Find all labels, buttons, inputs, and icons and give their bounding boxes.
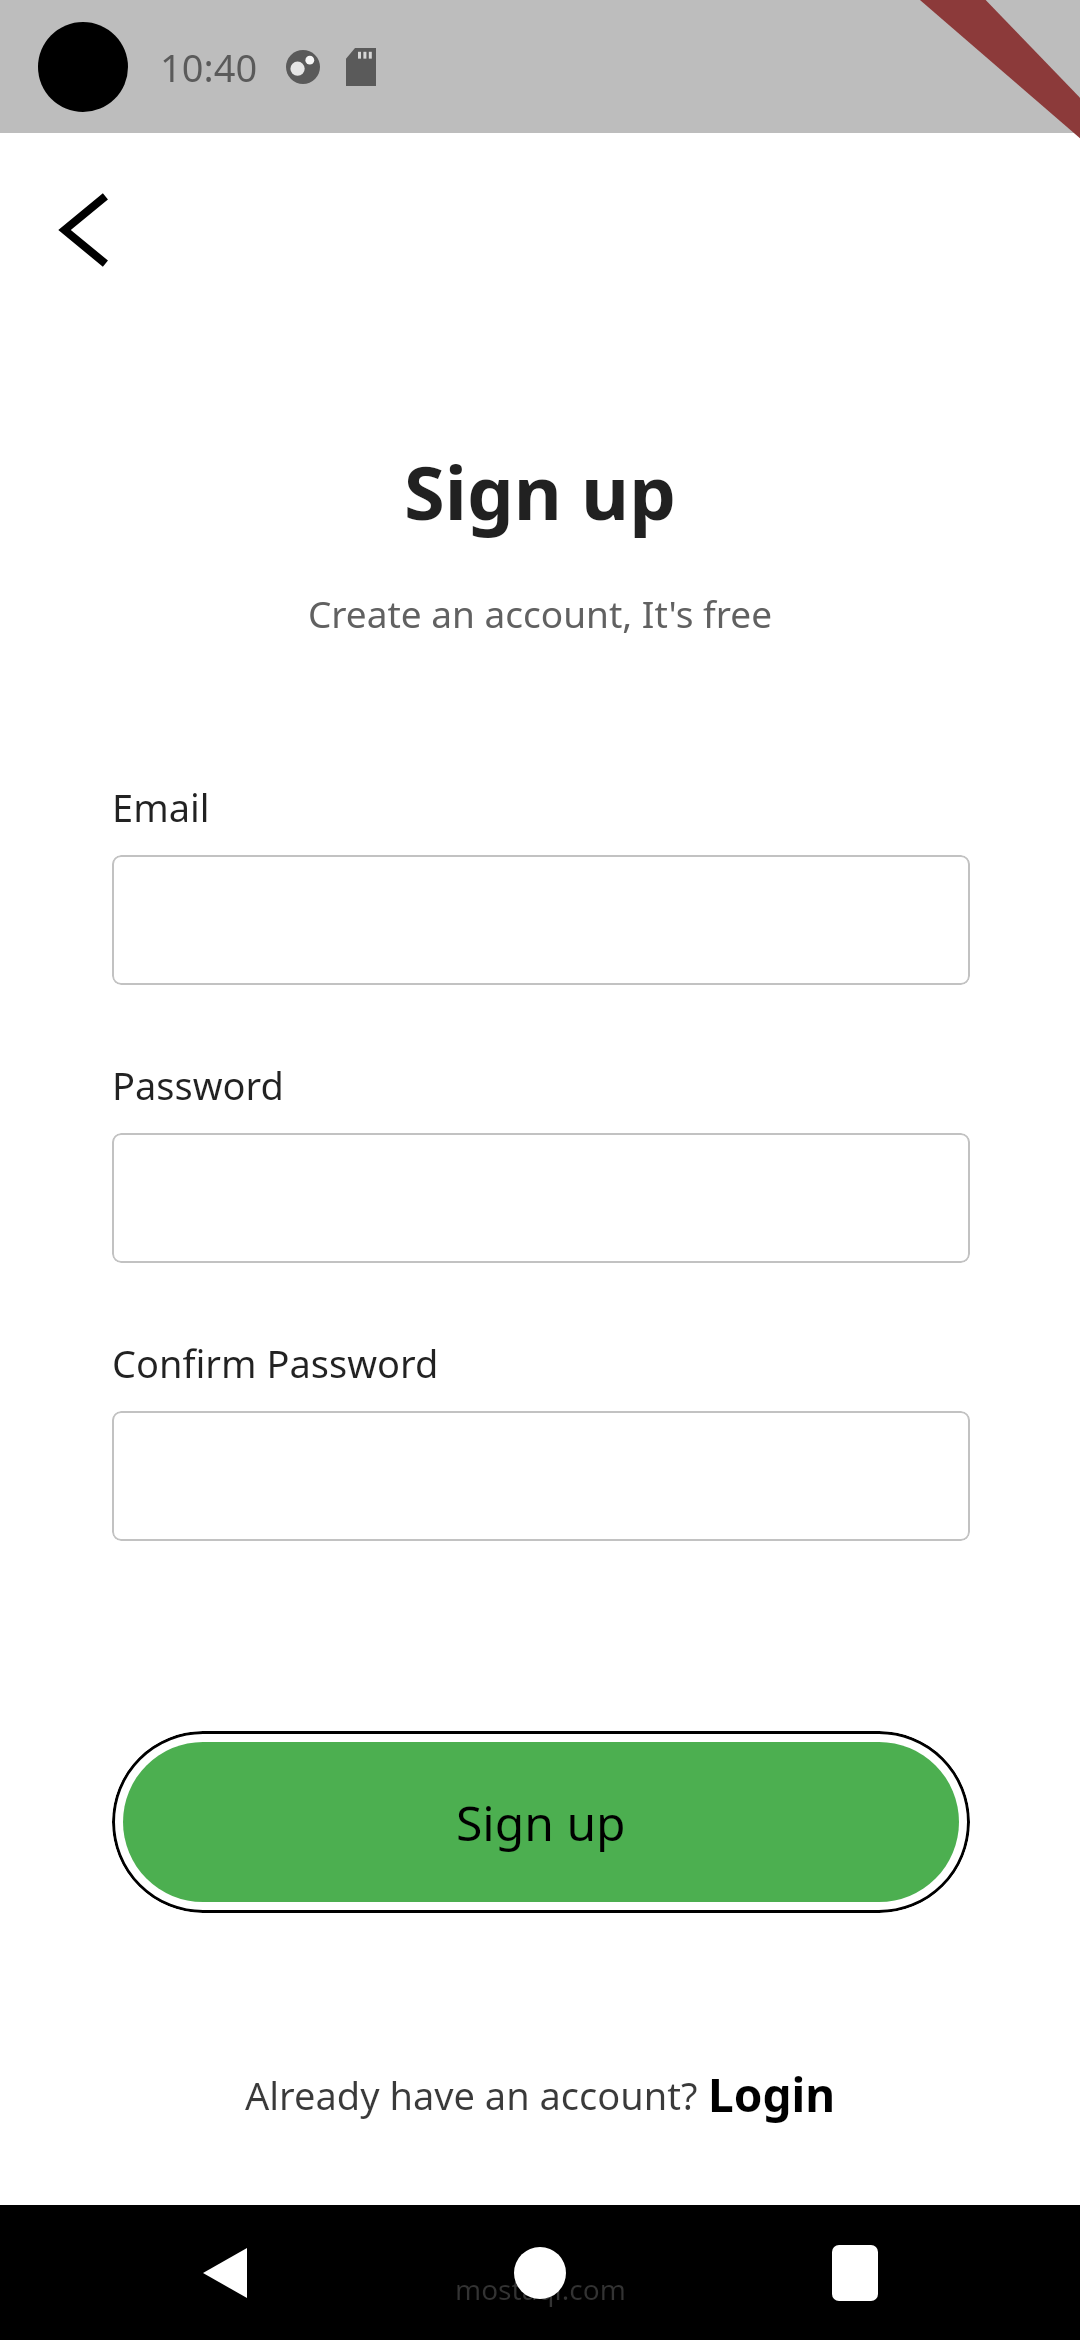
button[interactable]: Back xyxy=(28,175,138,285)
staticText: Confirm Password xyxy=(112,1337,439,1389)
staticText: Password xyxy=(112,1059,284,1111)
button[interactable]: Login xyxy=(708,2063,836,2126)
staticText: Already have an account? xyxy=(245,2069,708,2121)
staticText: Create an account, It's free xyxy=(0,588,1080,638)
button[interactable] xyxy=(112,1411,970,1541)
staticText: Login xyxy=(708,2063,836,2126)
button[interactable] xyxy=(112,1133,970,1263)
button[interactable]: Home xyxy=(485,2218,595,2328)
staticText: 10:40 xyxy=(160,41,258,93)
button[interactable]: Sign up xyxy=(112,1731,970,1913)
button[interactable]: Back xyxy=(170,2218,280,2328)
button[interactable] xyxy=(112,855,970,985)
staticText: Email xyxy=(112,781,210,833)
staticText: Sign up xyxy=(0,441,1080,542)
button[interactable]: Recent apps xyxy=(800,2218,910,2328)
staticText: Sign up xyxy=(456,1790,626,1855)
staticText: mostaql.com xyxy=(455,2270,626,2308)
